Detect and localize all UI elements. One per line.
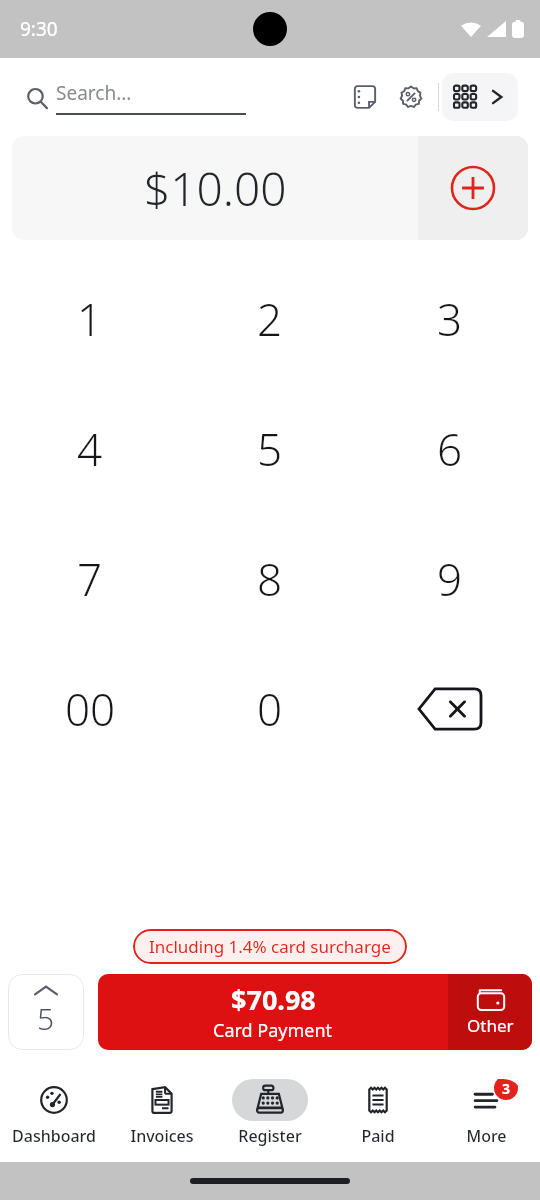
staticText: 1 <box>77 289 103 349</box>
staticText: 00 <box>65 679 116 739</box>
staticText: 2 <box>257 289 283 349</box>
button[interactable]: 6 <box>360 384 540 514</box>
button[interactable]: $70.98 <box>98 974 448 1050</box>
staticText: 3 <box>502 1079 511 1098</box>
button[interactable]: Notes <box>342 74 388 120</box>
staticText: Dashboard <box>12 1125 96 1147</box>
staticText: 7 <box>77 549 103 609</box>
button[interactable]: Paid <box>324 1064 432 1162</box>
staticText: Search... <box>56 80 132 106</box>
staticText: Including 1.4% card surcharge <box>149 935 391 958</box>
staticText: Card Payment <box>213 1018 333 1043</box>
staticText: 5 <box>37 998 55 1039</box>
staticText: Paid <box>361 1125 395 1147</box>
button[interactable]: 0 <box>180 644 360 774</box>
button[interactable]: 8 <box>180 514 360 644</box>
staticText: Other <box>467 1014 514 1037</box>
button[interactable]: Register <box>216 1064 324 1162</box>
staticText: Invoices <box>130 1125 194 1147</box>
button[interactable]: 1 <box>0 254 180 384</box>
button[interactable]: Including 1.4% card surcharge <box>133 929 407 964</box>
staticText: 4 <box>77 419 103 479</box>
staticText: 5 <box>257 419 283 479</box>
button[interactable]: 00 <box>0 644 180 774</box>
button[interactable]: Search... <box>26 80 342 115</box>
button[interactable]: 9 <box>360 514 540 644</box>
staticText: 3 <box>437 289 463 349</box>
button[interactable]: 5 <box>180 384 360 514</box>
staticText: 9 <box>437 549 463 609</box>
button[interactable]: Add item <box>418 136 528 240</box>
button[interactable]: Invoices <box>108 1064 216 1162</box>
staticText: $10.00 <box>144 157 287 220</box>
staticText: 0 <box>257 679 283 739</box>
staticText: $70.98 <box>231 981 316 1018</box>
staticText: Register <box>238 1125 302 1147</box>
staticText: 6 <box>437 419 463 479</box>
button[interactable]: 3 <box>432 1064 540 1162</box>
button[interactable]: Cart items, 5 <box>8 974 84 1050</box>
staticText: More <box>466 1125 507 1147</box>
button[interactable]: Dashboard <box>0 1064 108 1162</box>
button[interactable]: Products grid <box>442 73 518 121</box>
button[interactable]: 2 <box>180 254 360 384</box>
button[interactable]: $10.00 <box>12 136 418 240</box>
button[interactable]: Discount <box>388 74 434 120</box>
button[interactable]: Backspace <box>360 644 540 774</box>
button[interactable]: 7 <box>0 514 180 644</box>
staticText: 8 <box>257 549 283 609</box>
staticText: 9:30 <box>20 16 58 42</box>
button[interactable]: Other <box>448 974 532 1050</box>
button[interactable]: 4 <box>0 384 180 514</box>
button[interactable]: 3 <box>360 254 540 384</box>
